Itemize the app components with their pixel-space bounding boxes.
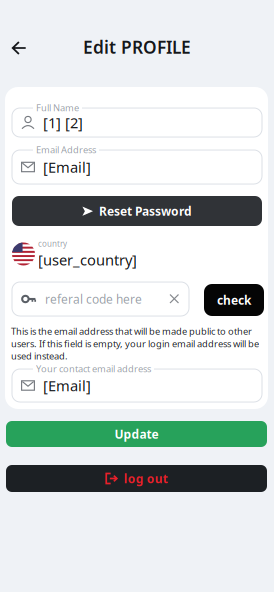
staticText: [1] [2] bbox=[43, 113, 83, 132]
button[interactable]: Back bbox=[3, 32, 35, 64]
staticText: [user_country] bbox=[38, 250, 137, 270]
staticText: check bbox=[217, 292, 251, 308]
staticText: Reset Password bbox=[99, 203, 192, 219]
staticText: country bbox=[38, 238, 67, 249]
staticText: Full Name bbox=[36, 101, 79, 114]
staticText: referal code here bbox=[45, 291, 142, 307]
staticText: This is the email address that will be m… bbox=[11, 325, 259, 362]
staticText: [Email] bbox=[43, 157, 91, 177]
button[interactable]: log out bbox=[6, 465, 267, 492]
button[interactable]: Update bbox=[6, 421, 267, 447]
button[interactable]: Reset Password bbox=[12, 196, 262, 226]
staticText: Your contact email address bbox=[36, 362, 151, 375]
button[interactable]: check bbox=[204, 284, 264, 316]
staticText: Email Address bbox=[36, 143, 96, 156]
button[interactable]: Clear referral code bbox=[169, 293, 180, 304]
staticText: log out bbox=[124, 470, 168, 486]
staticText: Edit PROFILE bbox=[83, 35, 191, 58]
staticText: [Email] bbox=[43, 376, 91, 395]
staticText: Update bbox=[114, 426, 158, 442]
